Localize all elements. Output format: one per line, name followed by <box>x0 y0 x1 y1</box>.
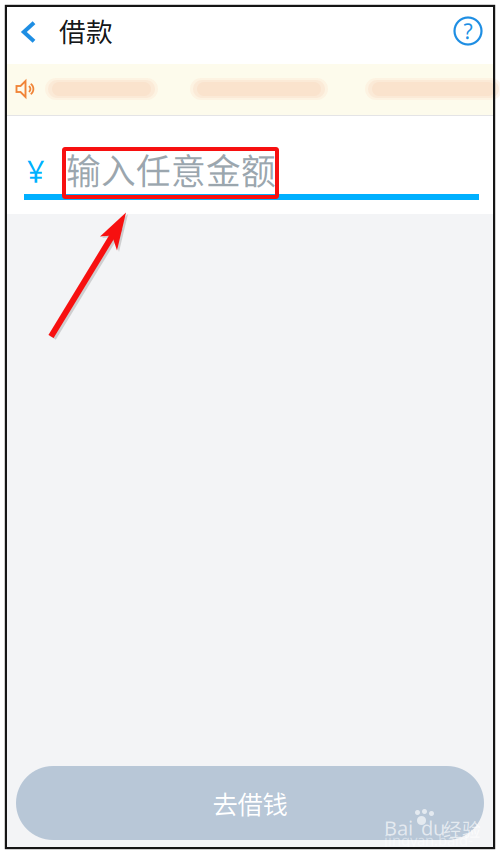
staticText: Bai <box>384 814 413 841</box>
staticText: ? <box>463 16 472 46</box>
staticText: jingyan.baidu.com <box>384 830 473 855</box>
staticText: ¥ <box>27 150 45 192</box>
staticText: 去借钱 <box>212 785 287 821</box>
staticText: du <box>421 814 445 841</box>
staticText: 输入任意金额 <box>66 144 276 194</box>
staticText: 借款 <box>59 11 113 50</box>
button[interactable]: 去借钱 <box>16 766 484 840</box>
button[interactable]: Help <box>441 2 495 60</box>
button[interactable]: Back <box>7 3 51 61</box>
staticText: 经验 <box>443 815 481 842</box>
